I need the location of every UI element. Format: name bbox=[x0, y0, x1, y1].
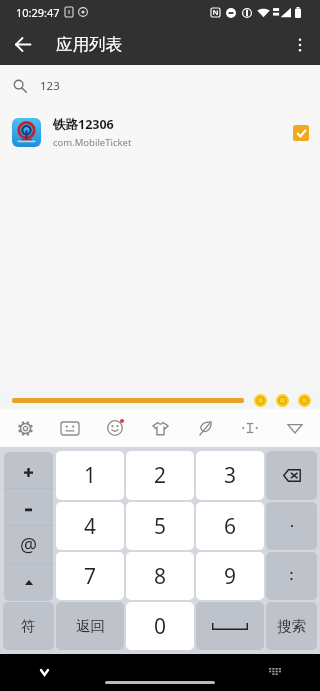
button[interactable]: 符 bbox=[3, 602, 54, 650]
button[interactable] bbox=[4, 489, 53, 525]
staticText: 2 bbox=[154, 461, 167, 490]
staticText: 4 bbox=[84, 512, 97, 541]
staticText: 7 bbox=[84, 562, 97, 591]
staticText: 8 bbox=[154, 562, 167, 591]
button[interactable]: More options bbox=[279, 24, 320, 65]
button[interactable]: Candidate option bbox=[298, 394, 311, 407]
staticText: @ bbox=[20, 532, 38, 558]
staticText: 5 bbox=[154, 512, 167, 541]
staticText: 123 bbox=[40, 78, 60, 94]
staticText: 6 bbox=[224, 512, 237, 541]
button[interactable]: 0 bbox=[126, 602, 194, 650]
button[interactable]: 铁路12306 bbox=[0, 106, 320, 159]
button[interactable]: 3 bbox=[196, 451, 264, 500]
staticText: 0 bbox=[154, 612, 167, 641]
button[interactable]: Space bbox=[196, 602, 264, 650]
button[interactable]: 9 bbox=[196, 552, 264, 600]
button[interactable]: Back bbox=[3, 25, 42, 64]
button[interactable]: 4 bbox=[56, 502, 124, 550]
staticText: 搜索 bbox=[277, 617, 306, 635]
button[interactable]: @ bbox=[4, 526, 53, 563]
button[interactable]: Candidate option bbox=[254, 394, 267, 407]
button[interactable]: Keyboard layout bbox=[50, 409, 90, 447]
button[interactable]: 返回 bbox=[56, 602, 124, 650]
button[interactable]: 搜索 bbox=[266, 602, 317, 650]
button[interactable]: 2 bbox=[126, 451, 194, 500]
button[interactable] bbox=[4, 452, 53, 488]
staticText: 1 bbox=[84, 461, 97, 490]
button[interactable]: 5 bbox=[126, 502, 194, 550]
staticText: 10:29:47 bbox=[16, 5, 60, 20]
button[interactable]: Period bbox=[266, 502, 317, 550]
button[interactable]: 1 bbox=[56, 451, 124, 500]
staticText: 铁路12306 bbox=[53, 116, 114, 133]
button[interactable]: Colon bbox=[266, 552, 317, 600]
button[interactable]: Shift bbox=[4, 564, 53, 601]
button[interactable]: Candidate bbox=[12, 398, 244, 403]
button[interactable]: Collapse bbox=[275, 409, 315, 447]
staticText: 应用列表 bbox=[56, 34, 122, 55]
button[interactable]: Handwriting bbox=[185, 409, 225, 447]
button[interactable]: Themes bbox=[140, 409, 180, 447]
button[interactable]: 123 bbox=[0, 65, 320, 106]
button[interactable]: Candidate option bbox=[276, 394, 289, 407]
button[interactable]: Delete bbox=[266, 451, 317, 500]
staticText: 9 bbox=[224, 562, 237, 591]
staticText: 3 bbox=[224, 461, 237, 490]
button[interactable]: 8 bbox=[126, 552, 194, 600]
button[interactable]: Text editing bbox=[230, 409, 270, 447]
staticText: com.MobileTicket bbox=[53, 136, 132, 149]
button[interactable]: 6 bbox=[196, 502, 264, 550]
button[interactable]: Switch input method bbox=[269, 668, 282, 681]
button[interactable]: Settings bbox=[5, 409, 45, 447]
button[interactable]: Hide keyboard bbox=[40, 669, 68, 691]
button[interactable]: Selected bbox=[293, 125, 309, 141]
staticText: 返回 bbox=[76, 617, 105, 635]
staticText: 符 bbox=[21, 617, 36, 635]
button[interactable]: 7 bbox=[56, 552, 124, 600]
button[interactable]: Emoji bbox=[95, 409, 135, 447]
